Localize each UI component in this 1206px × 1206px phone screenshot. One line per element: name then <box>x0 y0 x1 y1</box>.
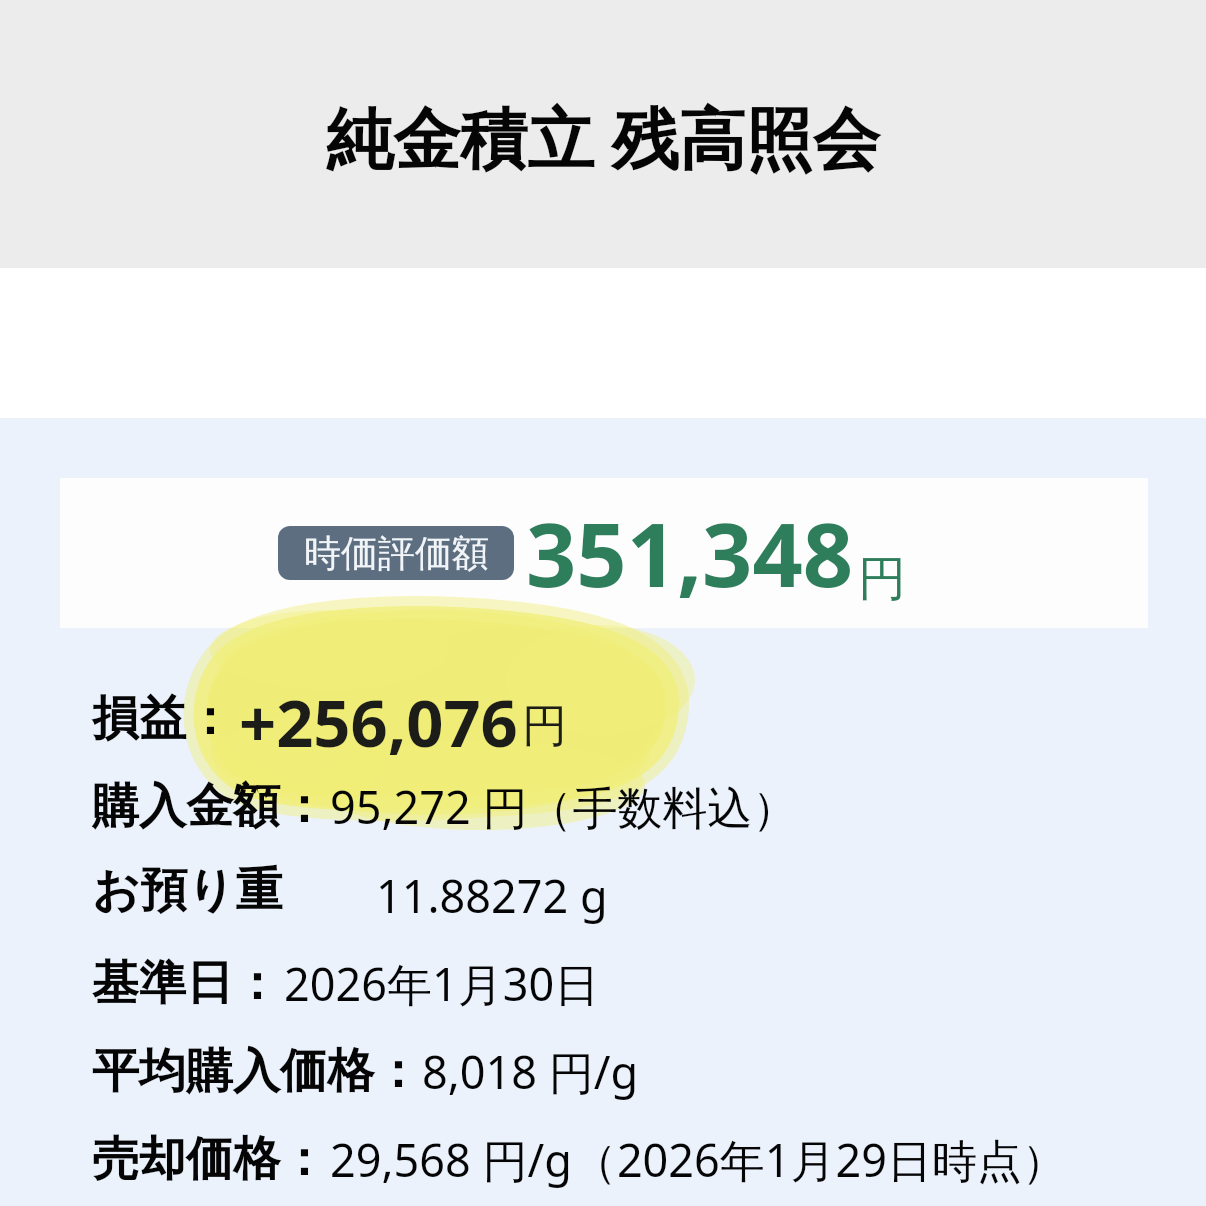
staticText: 11.88272 g <box>376 865 608 926</box>
staticText: お預り重量： <box>92 861 376 929</box>
staticText: 基準日： <box>92 954 280 1013</box>
staticText: 購入金額： <box>92 777 327 836</box>
staticText: 売却価格： <box>92 1130 327 1189</box>
staticText: 351,348 <box>526 493 854 613</box>
other: Highlighted profit <box>180 610 700 820</box>
staticText: 8,018 円/g <box>422 1041 639 1102</box>
button[interactable]: 平均購入価格： <box>92 1037 639 1105</box>
staticText: 29,568 円/g（2026年1月29日時点） <box>330 1129 1068 1190</box>
button[interactable]: 時価評価額 <box>60 478 1148 628</box>
button[interactable]: 売却価格： <box>92 1125 1068 1193</box>
staticText: 2026年1月30日 <box>284 953 600 1014</box>
staticText: 95,272 円（手数料込） <box>330 776 798 837</box>
staticText: 時価評価額 <box>304 530 489 577</box>
staticText: 円 <box>858 549 906 609</box>
staticText: +256,076 <box>239 678 518 758</box>
button[interactable]: 購入金額： <box>92 772 798 840</box>
staticText: 純金積立 残高照会 <box>326 91 880 183</box>
button[interactable]: 損益： <box>92 678 563 758</box>
staticText: 円 <box>522 698 567 755</box>
button[interactable]: お預り重量： <box>92 861 608 929</box>
staticText: 平均購入価格： <box>92 1042 421 1101</box>
staticText: 損益： <box>92 689 233 748</box>
button[interactable]: 基準日： <box>92 949 600 1017</box>
